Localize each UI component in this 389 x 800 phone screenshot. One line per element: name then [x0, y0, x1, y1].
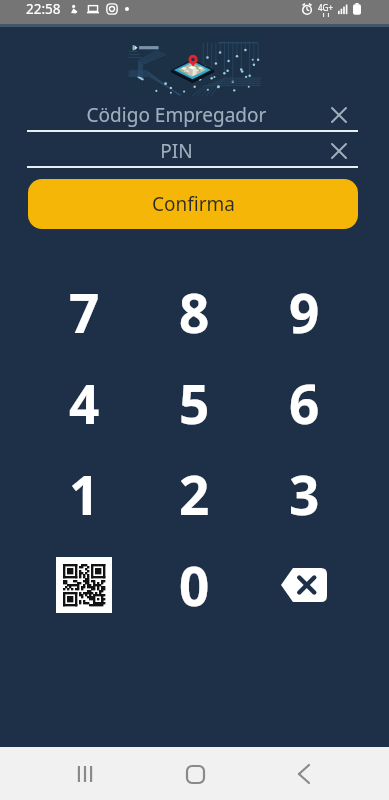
- staticText: 6: [289, 367, 320, 439]
- button[interactable]: 1: [29, 448, 139, 539]
- button[interactable]: Back: [280, 750, 328, 798]
- staticText: Confirma: [152, 191, 235, 217]
- button[interactable]: Clear Cödigo Empregador: [326, 102, 352, 128]
- button[interactable]: 2: [139, 448, 249, 539]
- button[interactable]: 7: [29, 266, 139, 357]
- button[interactable]: Clear PIN: [326, 138, 352, 164]
- button[interactable]: 0: [139, 539, 249, 630]
- staticText: 2: [179, 458, 210, 530]
- button[interactable]: 6: [249, 357, 359, 448]
- button[interactable]: Confirma: [28, 179, 358, 229]
- button[interactable]: 8: [139, 266, 249, 357]
- staticText: 5: [179, 367, 210, 439]
- button[interactable]: 9: [249, 266, 359, 357]
- staticText: 1: [69, 458, 100, 530]
- staticText: 3: [289, 458, 320, 530]
- staticText: Cödigo Empregador: [27, 102, 326, 128]
- staticText: 4G+: [318, 2, 333, 13]
- staticText: 22:58: [26, 0, 61, 18]
- staticText: PIN: [27, 138, 326, 164]
- staticText: 4: [69, 367, 100, 439]
- button[interactable]: Scan QR code: [29, 539, 139, 630]
- button[interactable]: Home: [171, 750, 219, 798]
- other: Backspace: [281, 568, 327, 602]
- other: Scan QR code: [56, 557, 112, 613]
- staticText: 9: [289, 276, 320, 348]
- staticText: 7: [69, 276, 100, 348]
- staticText: 8: [179, 276, 210, 348]
- button[interactable]: Recent apps: [61, 750, 109, 798]
- button[interactable]: 4: [29, 357, 139, 448]
- staticText: 0: [179, 549, 210, 621]
- button[interactable]: Backspace: [249, 539, 359, 630]
- button[interactable]: 5: [139, 357, 249, 448]
- button[interactable]: 3: [249, 448, 359, 539]
